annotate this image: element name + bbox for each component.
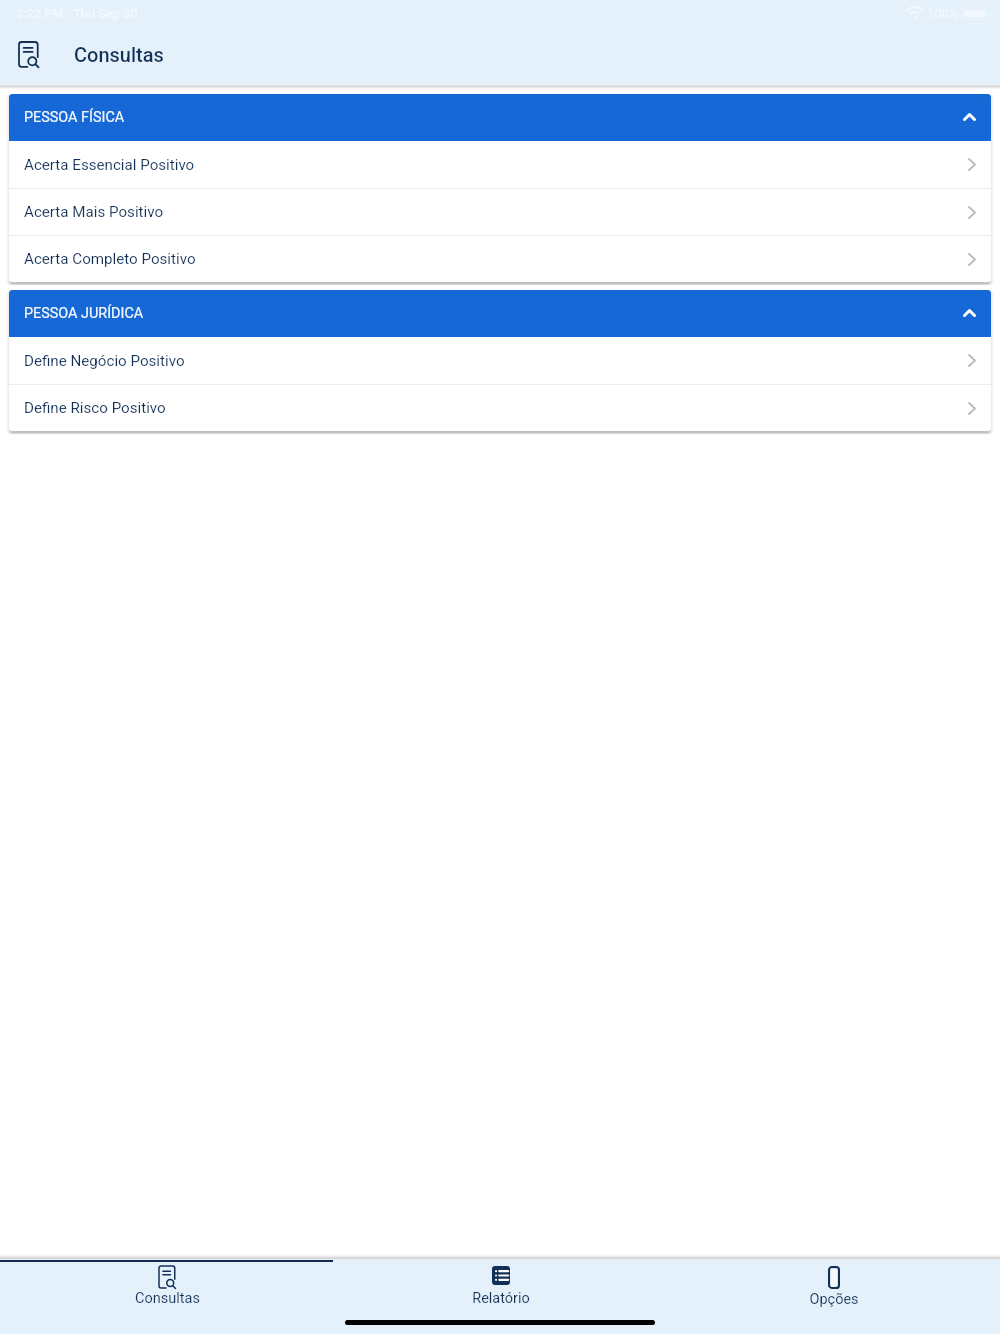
staticText: Define Risco Positivo — [24, 399, 166, 417]
staticText: Acerta Essencial Positivo — [24, 156, 195, 174]
staticText: 3:22 PM — [16, 6, 64, 21]
staticText: Consultas — [74, 43, 164, 66]
staticText: Define Negócio Positivo — [24, 352, 185, 370]
staticText: PESSOA FÍSICA — [24, 109, 125, 126]
staticText: Relatório — [472, 1290, 530, 1307]
button[interactable]: Consultas — [0, 1259, 334, 1334]
button[interactable]: Acerta Completo Positivo — [9, 236, 991, 282]
button[interactable]: PESSOA FÍSICA — [9, 94, 991, 141]
staticText: Opções — [809, 1291, 859, 1308]
staticText: 100% — [927, 6, 958, 21]
button[interactable]: Consultas — [19, 42, 38, 67]
button[interactable]: Acerta Essencial Positivo — [9, 141, 991, 188]
button[interactable]: Define Risco Positivo — [9, 385, 991, 431]
staticText: Acerta Mais Positivo — [24, 203, 164, 221]
button[interactable]: Relatório — [334, 1259, 667, 1334]
button[interactable]: Acerta Mais Positivo — [9, 189, 991, 235]
staticText: Consultas — [135, 1290, 200, 1307]
staticText: Thu Sep 30 — [73, 6, 138, 21]
staticText: PESSOA JURÍDICA — [24, 305, 144, 322]
button[interactable]: Define Negócio Positivo — [9, 337, 991, 384]
button[interactable]: PESSOA JURÍDICA — [9, 290, 991, 337]
button[interactable]: Opções — [667, 1259, 1000, 1334]
staticText: Acerta Completo Positivo — [24, 250, 196, 268]
